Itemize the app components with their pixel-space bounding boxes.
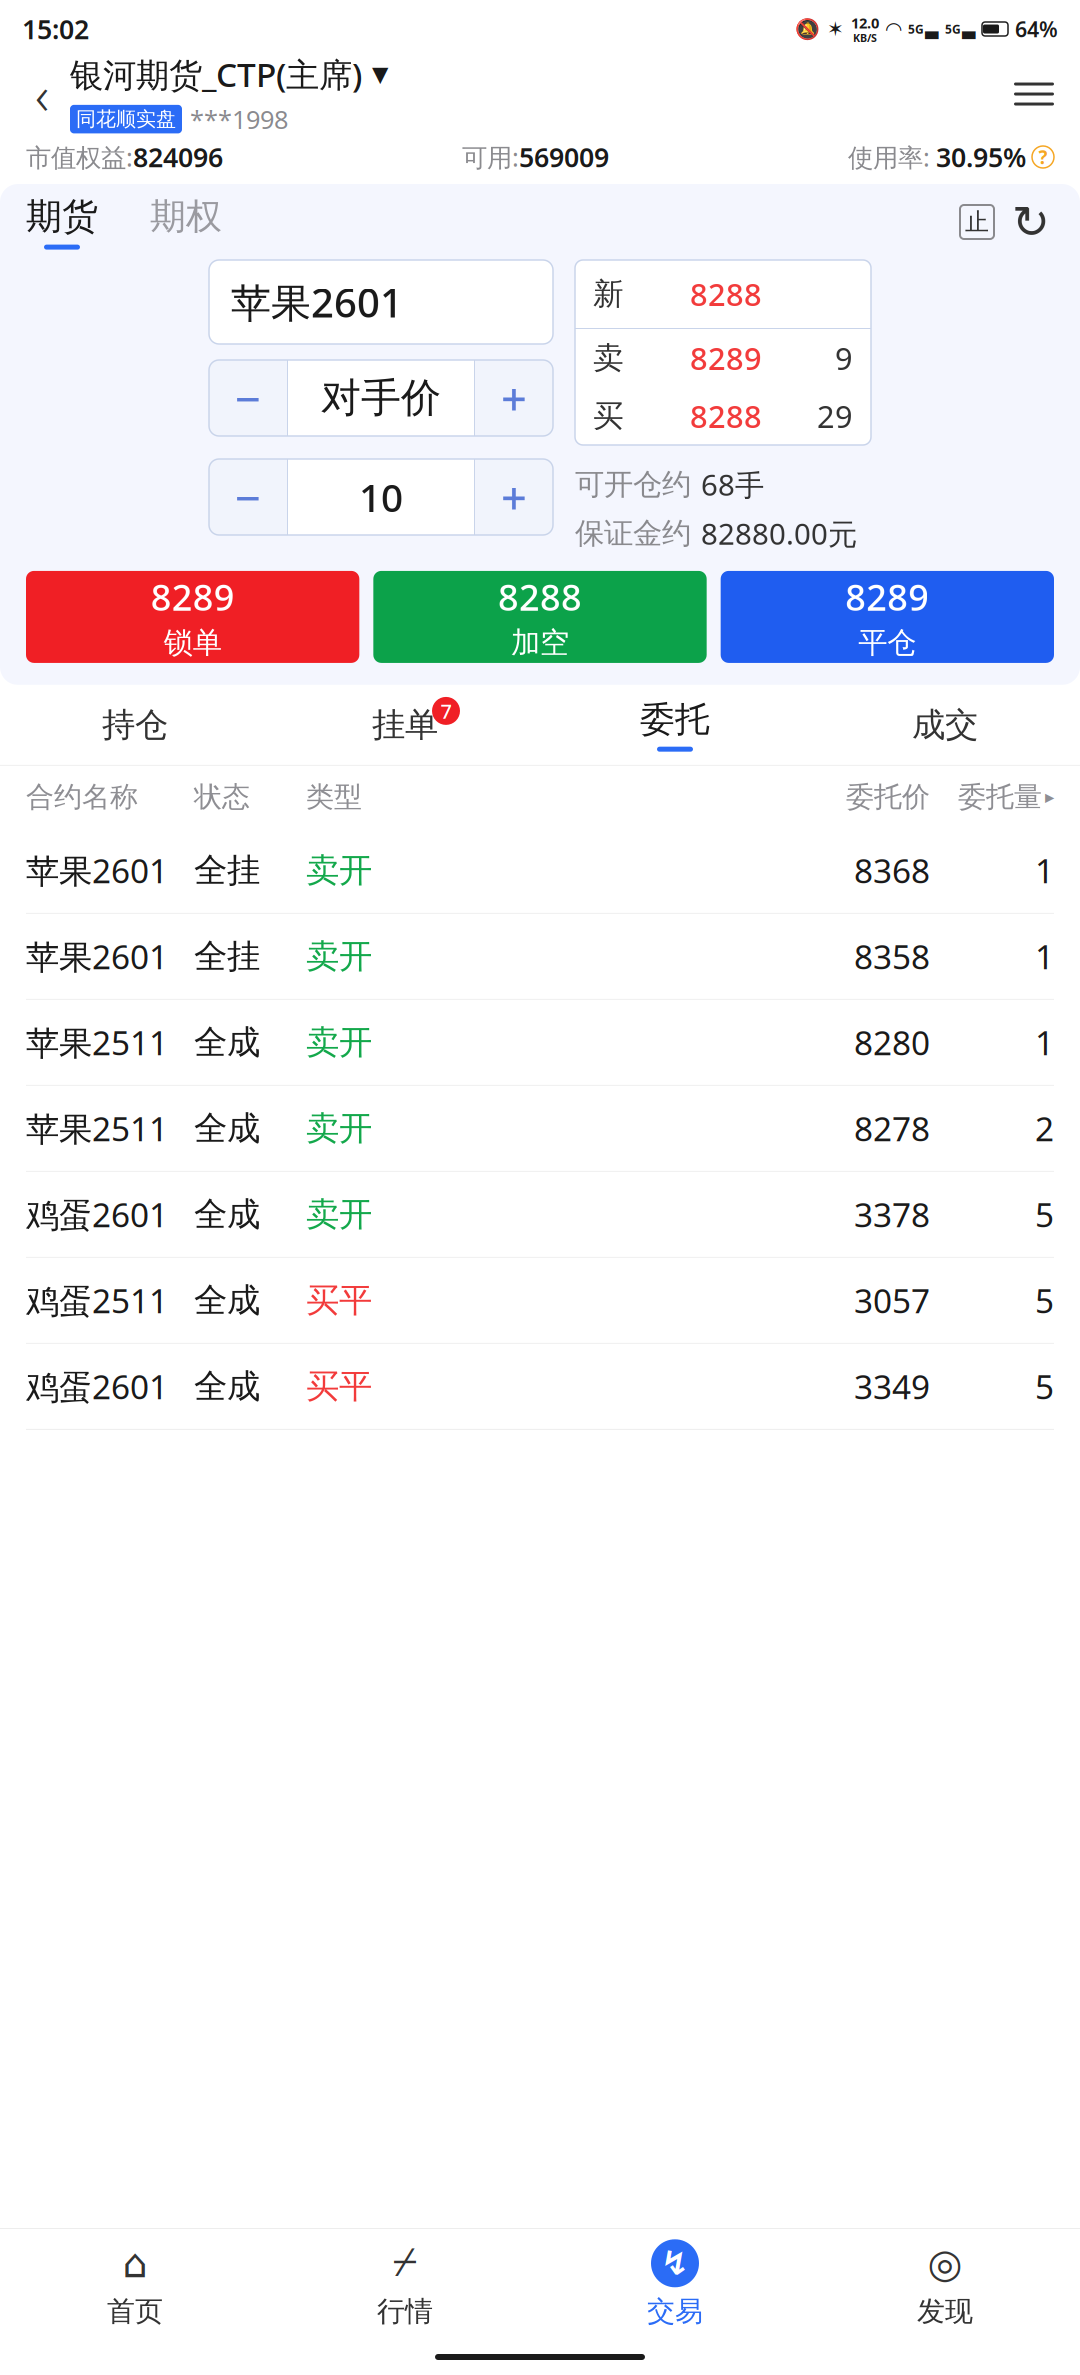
button[interactable]: 挂单 — [270, 685, 540, 765]
staticText: 64% — [1015, 15, 1058, 43]
staticText: 鸡蛋2511 — [26, 1278, 168, 1323]
staticText: 7 — [440, 698, 451, 724]
button[interactable]: 返回 — [14, 62, 70, 126]
staticText: ◠ — [886, 18, 901, 40]
staticText: 8289 — [690, 338, 762, 378]
staticText: 卖开 — [306, 1194, 372, 1235]
staticText: 类型 — [306, 780, 362, 814]
staticText: 8288 — [690, 274, 762, 314]
staticText: 银河期货_CTP(主席) — [70, 52, 362, 96]
button[interactable]: 苹果2511 — [0, 1086, 1080, 1172]
button[interactable]: 减少 — [209, 360, 287, 436]
button[interactable]: 苹果2601 — [0, 828, 1080, 914]
staticText: 5 — [1035, 1364, 1054, 1409]
button[interactable]: ⌂ — [0, 2229, 270, 2339]
staticText: 3378 — [854, 1192, 930, 1237]
staticText: 1 — [1035, 848, 1054, 893]
staticText: 买 — [593, 397, 624, 435]
button[interactable]: 菜单 — [1002, 62, 1066, 126]
staticText: 苹果2601 — [231, 275, 403, 328]
button[interactable]: 鸡蛋2511 — [0, 1258, 1080, 1344]
staticText: 全成 — [194, 1108, 260, 1149]
staticText: 卖开 — [306, 936, 372, 977]
button[interactable]: 增加 — [475, 459, 553, 535]
staticText: 止 — [965, 207, 989, 237]
staticText: ✶ — [827, 18, 844, 40]
button[interactable]: 苹果2601 — [0, 914, 1080, 1000]
button[interactable]: 8289 — [721, 571, 1054, 663]
staticText: 8288 — [498, 573, 582, 621]
staticText: 824096 — [133, 139, 223, 175]
staticText: 5G — [908, 21, 924, 37]
staticText: 9 — [835, 338, 853, 378]
staticText: 加空 — [511, 625, 569, 661]
staticText: 569009 — [519, 139, 609, 175]
staticText: ⌿ — [393, 2244, 417, 2283]
button[interactable]: 委托 — [540, 685, 810, 765]
staticText: 卖 — [593, 339, 624, 377]
button[interactable]: 持仓 — [0, 685, 270, 765]
button[interactable]: 使用率说明 — [1032, 146, 1054, 168]
staticText: KB/S — [853, 31, 877, 45]
staticText: − — [235, 368, 261, 428]
staticText: 5 — [1035, 1278, 1054, 1323]
button[interactable]: 刷新 — [1004, 195, 1058, 249]
button[interactable]: 减少 — [209, 459, 287, 535]
button[interactable]: 期权 — [146, 194, 226, 250]
staticText: 市值权益: — [26, 140, 133, 174]
button[interactable]: 增加 — [475, 360, 553, 436]
staticText: 使用率: — [848, 140, 930, 174]
staticText: 卖开 — [306, 850, 372, 891]
button[interactable]: 银河期货_CTP(主席) — [70, 52, 388, 96]
staticText: ‹ — [35, 59, 49, 129]
staticText: 平仓 — [858, 625, 916, 661]
staticText: 5G — [945, 21, 961, 37]
staticText: ◎ — [927, 2241, 962, 2286]
staticText: ▃ — [925, 19, 938, 39]
staticText: 苹果2511 — [26, 1020, 168, 1065]
staticText: 期货 — [26, 194, 98, 239]
button[interactable]: 鸡蛋2601 — [0, 1172, 1080, 1258]
staticText: 10 — [359, 471, 403, 523]
button[interactable]: ⌿ — [270, 2229, 540, 2339]
staticText: 全成 — [194, 1022, 260, 1063]
staticText: 82880.00元 — [701, 514, 857, 553]
button[interactable]: 8288 — [373, 571, 707, 663]
staticText: 苹果2601 — [26, 934, 168, 979]
button[interactable]: ◎ — [810, 2229, 1080, 2339]
button[interactable]: 期货 — [22, 194, 102, 250]
staticText: 1 — [1035, 1020, 1054, 1065]
staticText: 15:02 — [22, 11, 89, 47]
button[interactable]: 苹果2601 — [209, 260, 553, 344]
staticText: 同花顺实盘 — [76, 107, 176, 131]
staticText: 买平 — [306, 1366, 372, 1407]
staticText: ▸ — [1045, 786, 1054, 807]
staticText: 全成 — [194, 1280, 260, 1321]
staticText: 8278 — [854, 1106, 930, 1151]
staticText: 成交 — [912, 704, 978, 745]
staticText: 8289 — [845, 573, 929, 621]
staticText: 30.95% — [936, 139, 1026, 175]
button[interactable]: ↯ — [540, 2229, 810, 2339]
staticText: 委托 — [640, 698, 710, 741]
button[interactable]: 成交 — [810, 685, 1080, 765]
staticText: 全挂 — [194, 850, 260, 891]
staticText: 期权 — [150, 194, 222, 239]
button[interactable]: 止盈止损 — [950, 195, 1004, 249]
staticText: ? — [1038, 145, 1047, 169]
button[interactable]: 8289 — [26, 571, 359, 663]
staticText: 8368 — [854, 848, 930, 893]
staticText: 卖开 — [306, 1108, 372, 1149]
staticText: 委托量 — [958, 780, 1042, 814]
staticText: 交易 — [647, 2294, 703, 2329]
staticText: 12.0 — [851, 13, 879, 33]
button[interactable]: 苹果2511 — [0, 1000, 1080, 1086]
staticText: 29 — [817, 396, 853, 436]
button[interactable]: 鸡蛋2601 — [0, 1344, 1080, 1430]
staticText: 全成 — [194, 1194, 260, 1235]
staticText: 2 — [1035, 1106, 1054, 1151]
staticText: 鸡蛋2601 — [26, 1192, 168, 1237]
staticText: 🔕 — [795, 18, 820, 40]
staticText: ***1998 — [190, 102, 288, 136]
staticText: + — [501, 368, 527, 428]
